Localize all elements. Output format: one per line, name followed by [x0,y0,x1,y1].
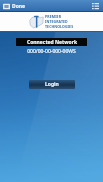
button[interactable]: Done [2,2,27,11]
staticText: 000/00-00-000-00WS [27,48,76,55]
staticText: PREMIER [45,14,62,19]
button[interactable]: Connected Network [16,38,87,46]
staticText: Connected Network [27,39,77,46]
button[interactable]: Login [29,80,75,89]
staticText: Done [12,3,26,10]
staticText: Login [45,81,59,88]
button[interactable]: Menu [91,2,100,11]
staticText: TECHNOLOGIES [45,24,74,29]
staticText: INTEGRATED [45,19,68,24]
